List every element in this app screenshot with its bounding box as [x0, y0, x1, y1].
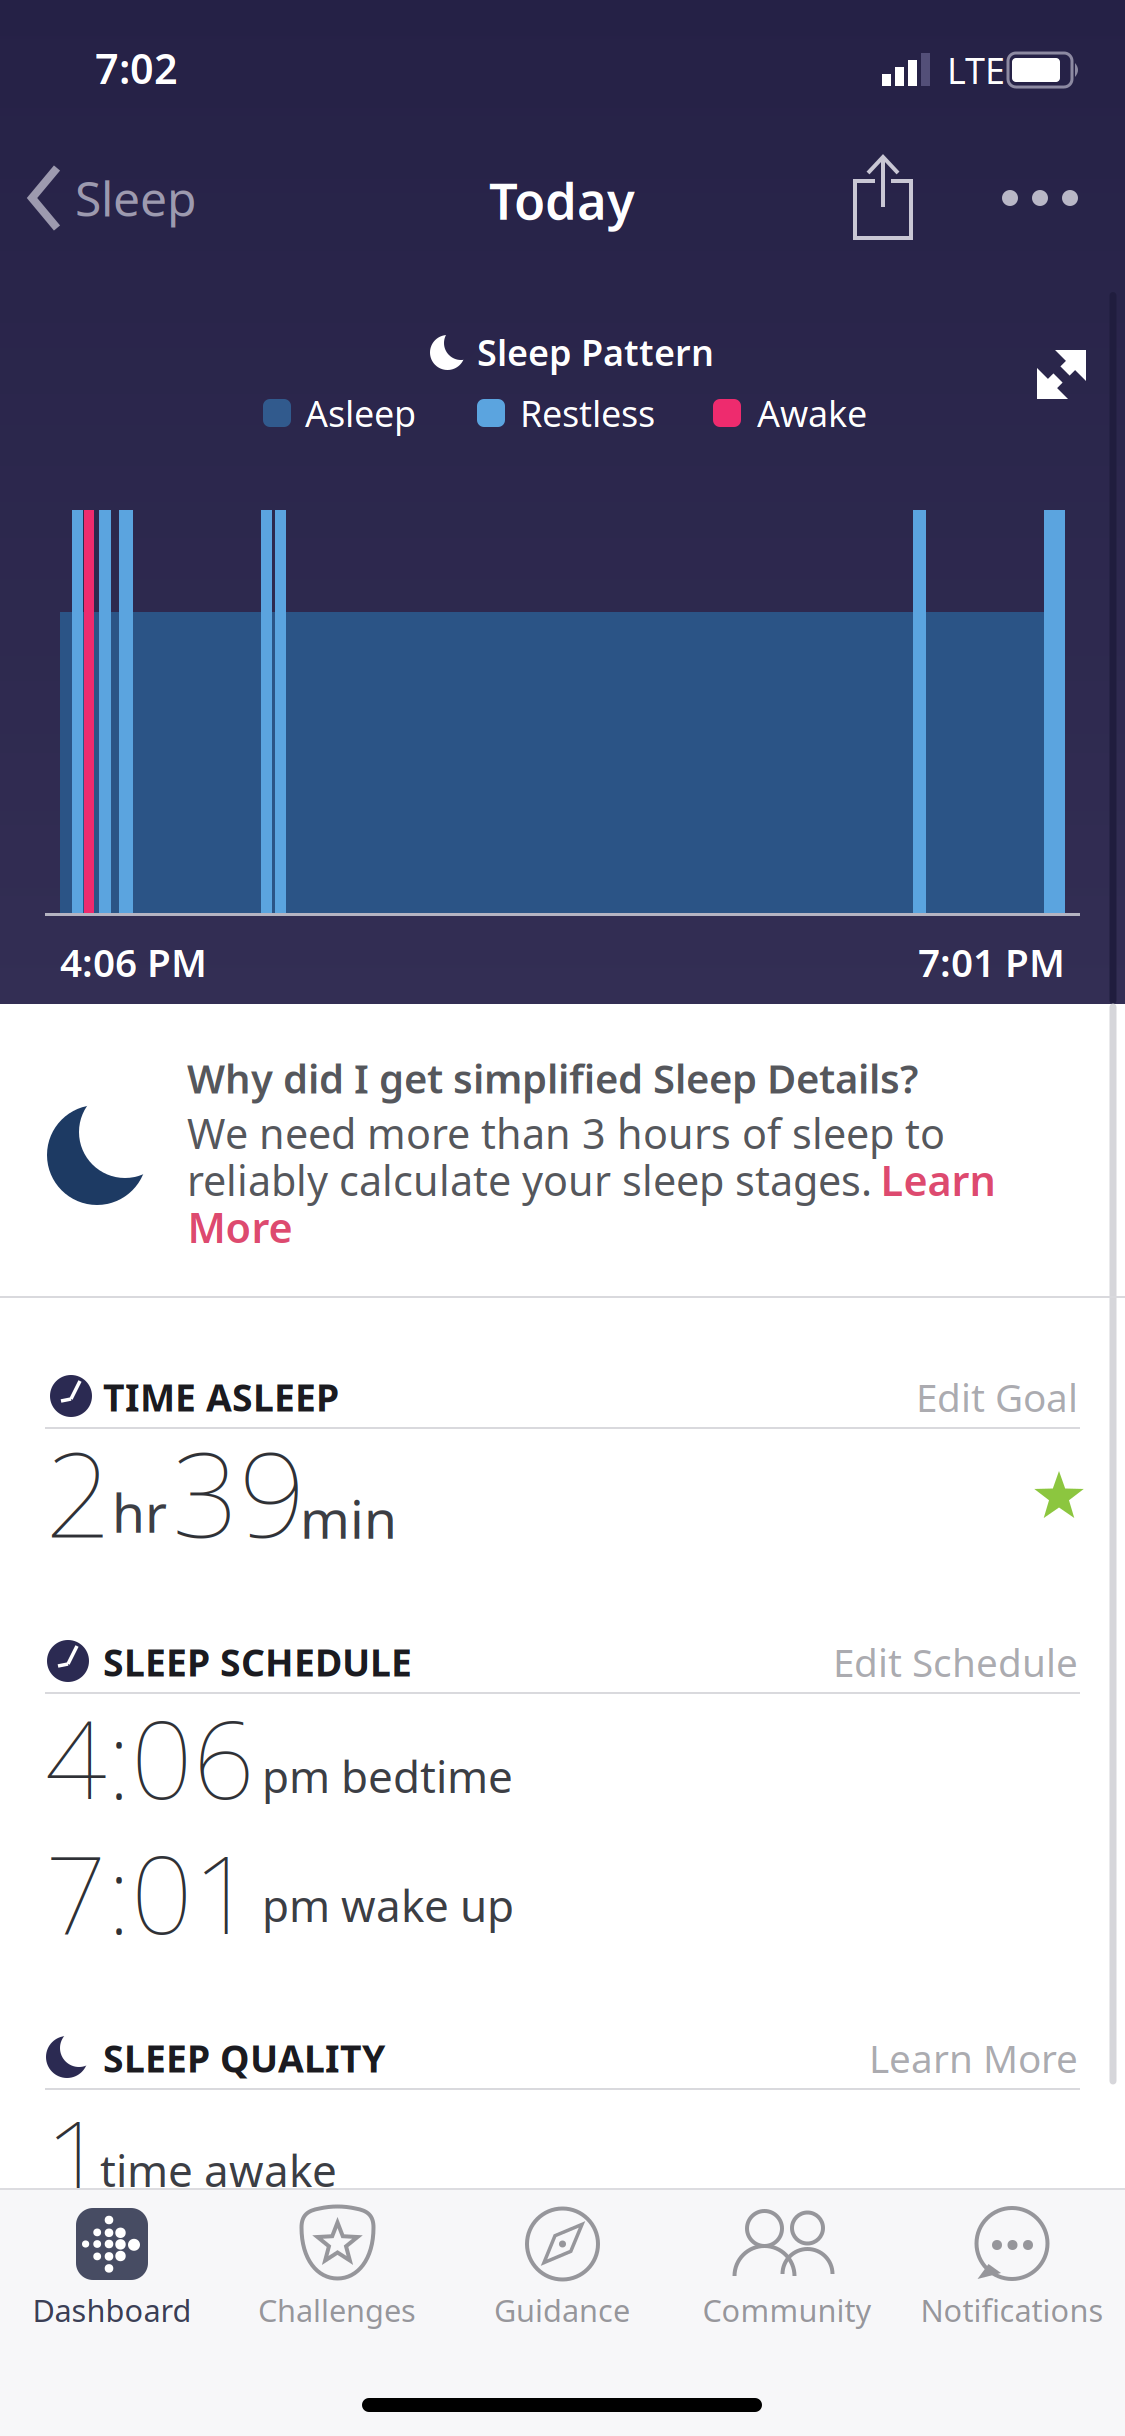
staticText: Edit Schedule	[833, 1636, 1078, 1688]
staticText: Sleep Pattern	[477, 328, 714, 376]
button[interactable]: Community	[675, 2200, 900, 2370]
staticText: Edit Goal	[916, 1371, 1078, 1423]
staticText: Notifications	[920, 2290, 1103, 2330]
button[interactable]	[828, 143, 938, 253]
staticText: time awake	[100, 2141, 337, 2199]
button[interactable]: Guidance	[450, 2200, 675, 2370]
staticText: Awake	[757, 389, 867, 437]
staticText: LTE	[947, 46, 1005, 94]
staticText: TIME ASLEEP	[103, 1372, 339, 1422]
staticText: Community	[702, 2290, 871, 2330]
button[interactable]	[985, 158, 1095, 238]
staticText: Learn More	[869, 2032, 1078, 2084]
staticText: SLEEP QUALITY	[103, 2033, 385, 2083]
staticText: 39	[172, 1414, 306, 1570]
staticText: More	[187, 1200, 292, 1254]
button[interactable]	[1011, 325, 1111, 425]
staticText: pm wake up	[262, 1876, 514, 1934]
button[interactable]: Edit Goal	[678, 1347, 1078, 1447]
button[interactable]: Learn	[880, 1153, 995, 1207]
staticText: reliably calculate your sleep stages.	[187, 1153, 872, 1207]
staticText: SLEEP SCHEDULE	[103, 1637, 412, 1687]
staticText: Today	[489, 166, 635, 234]
button[interactable]: Challenges	[225, 2200, 450, 2370]
button[interactable]: Sleep	[25, 148, 265, 248]
button[interactable]: Dashboard	[0, 2200, 225, 2370]
staticText: 4:06	[45, 1685, 255, 1829]
staticText: hr	[112, 1477, 167, 1547]
staticText: Asleep	[305, 389, 416, 437]
staticText: Sleep	[75, 166, 197, 230]
staticText: Dashboard	[32, 2290, 191, 2330]
staticText: pm bedtime	[262, 1747, 513, 1805]
button[interactable]: Edit Schedule	[678, 1612, 1078, 1712]
staticText: Why did I get simplified Sleep Details?	[187, 1051, 918, 1104]
button[interactable]: Learn More	[678, 2008, 1078, 2108]
button[interactable]: Notifications	[900, 2200, 1125, 2370]
button[interactable]: More	[187, 1200, 292, 1254]
staticText: Restless	[520, 389, 655, 437]
staticText: 7:02	[95, 41, 178, 95]
staticText: min	[300, 1483, 397, 1553]
staticText: 7:01	[45, 1820, 255, 1964]
staticText: Challenges	[258, 2290, 416, 2330]
staticText: 7:01 PM	[918, 936, 1065, 988]
staticText: 1	[45, 2085, 107, 2229]
staticText: Learn	[880, 1153, 995, 1207]
staticText: 4:06 PM	[60, 936, 207, 988]
staticText: Guidance	[494, 2290, 630, 2330]
staticText: 2	[45, 1414, 112, 1570]
staticText: We need more than 3 hours of sleep to	[187, 1106, 945, 1160]
